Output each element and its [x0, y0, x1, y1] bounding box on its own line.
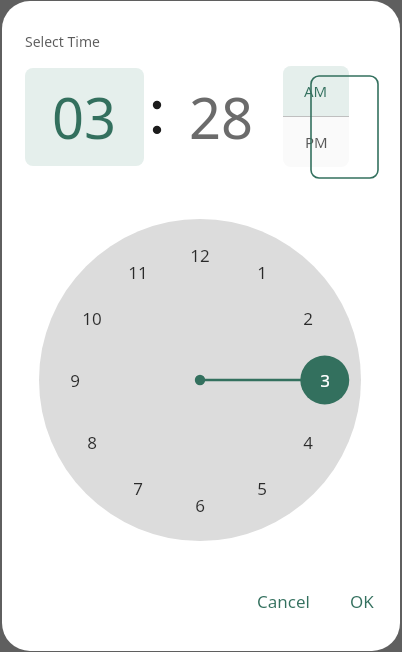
staticText: 3: [320, 369, 330, 392]
staticText: AM: [304, 81, 328, 101]
staticText: 12: [190, 244, 210, 267]
staticText: 10: [82, 307, 102, 330]
staticText: Select Time: [25, 32, 100, 51]
button[interactable]: Cancel: [245, 582, 322, 621]
button[interactable]: AM: [283, 66, 349, 116]
staticText: 6: [195, 494, 205, 517]
staticText: OK: [350, 590, 374, 613]
staticText: PM: [305, 132, 328, 152]
staticText: 9: [70, 369, 80, 392]
button[interactable]: 03: [25, 68, 144, 166]
staticText: 03: [52, 79, 117, 155]
button[interactable]: 28: [170, 68, 273, 166]
staticText: 5: [257, 477, 267, 500]
button[interactable]: PM: [283, 117, 349, 167]
staticText: 28: [189, 79, 254, 155]
staticText: 4: [303, 431, 313, 454]
button[interactable]: OK: [338, 582, 386, 621]
button[interactable]: Clock dial, 3 o'clock selected: [39, 219, 361, 541]
staticText: 8: [87, 431, 97, 454]
staticText: 1: [257, 261, 267, 284]
staticText: Cancel: [257, 590, 310, 613]
staticText: 7: [133, 477, 143, 500]
staticText: 2: [303, 307, 313, 330]
staticText: 11: [128, 261, 148, 284]
